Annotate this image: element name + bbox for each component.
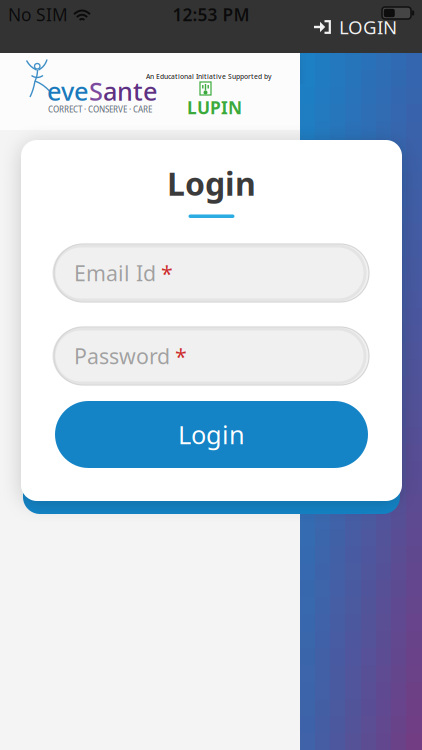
staticText: S <box>89 74 103 108</box>
staticText: CORRECT · CONSERVE · CARE <box>48 104 152 115</box>
staticText: * <box>161 259 173 287</box>
button[interactable]: LOGIN <box>314 16 414 38</box>
staticText: ante <box>103 74 158 108</box>
staticText: * <box>175 342 187 370</box>
staticText: Login <box>167 162 256 204</box>
button[interactable]: Login <box>55 401 368 468</box>
button[interactable]: Email Id <box>54 244 369 302</box>
staticText: LUPIN <box>187 96 242 119</box>
staticText: Password <box>74 342 170 370</box>
staticText: Login <box>178 418 245 451</box>
staticText: No SIM <box>8 3 68 26</box>
staticText: Email Id <box>74 259 156 287</box>
staticText: eve <box>47 74 89 108</box>
staticText: LOGIN <box>339 15 397 39</box>
button[interactable]: Password <box>54 327 369 385</box>
staticText: 12:53 PM <box>172 3 249 26</box>
staticText: An Educational Initiative Supported by <box>146 72 272 81</box>
